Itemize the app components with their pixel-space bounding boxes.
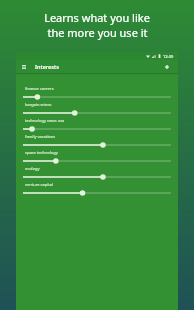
button[interactable]: space technology [16,148,178,164]
staticText: bargain wines [25,102,52,107]
staticText: Interests [35,63,59,71]
button[interactable]: Open navigation menu [19,62,29,72]
button[interactable]: venture capital [16,180,178,196]
staticText: ecology [25,166,40,171]
staticText: finance careers [25,86,54,91]
staticText: space technology [25,150,58,155]
button[interactable]: technology news usa [16,116,178,132]
staticText: family vacations [25,134,56,139]
staticText: venture capital [25,182,53,187]
staticText: 12:30 [163,54,174,59]
button[interactable]: finance careers [16,84,178,100]
staticText: Learns what you like [44,10,150,25]
button[interactable]: bargain wines [16,100,178,116]
button[interactable]: family vacations [16,132,178,148]
staticText: the more you use it [47,25,148,40]
button[interactable]: Add interest [162,62,172,72]
staticText: technology news usa [25,118,65,123]
button[interactable]: ecology [16,164,178,180]
